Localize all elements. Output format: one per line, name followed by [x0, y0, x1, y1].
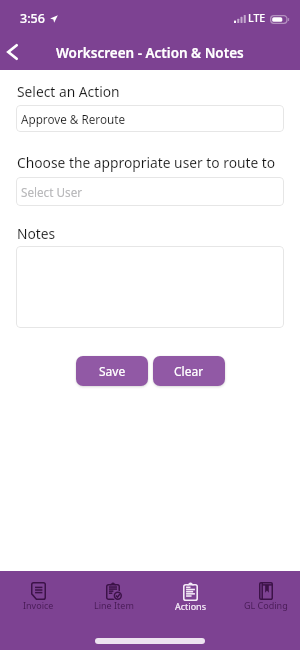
staticText: Clear	[174, 363, 204, 379]
button[interactable]: Select User	[16, 177, 284, 206]
staticText: Select an Action	[17, 82, 120, 101]
staticText: Save	[99, 363, 126, 379]
button[interactable]: Approve & Reroute	[16, 105, 284, 132]
button[interactable]: Back	[0, 30, 25, 70]
staticText: Approve & Reroute	[21, 111, 125, 127]
staticText: 3:56	[20, 10, 45, 27]
staticText: Invoice	[23, 599, 54, 611]
staticText: Actions	[175, 600, 206, 612]
staticText: Notes	[17, 224, 56, 243]
button[interactable]: Actions	[152, 573, 228, 621]
button[interactable]: Save	[76, 356, 148, 386]
staticText: Workscreen - Action & Notes	[56, 44, 244, 62]
button[interactable]: GL Coding	[228, 573, 300, 621]
staticText: Line Item	[94, 599, 134, 611]
staticText: Choose the appropriate user to route to	[17, 153, 276, 172]
button[interactable]: Invoice	[0, 573, 76, 621]
staticText: LTE	[248, 11, 266, 25]
button[interactable]: Line Item	[76, 573, 152, 621]
staticText: GL Coding	[244, 599, 288, 611]
button[interactable]: Clear	[153, 356, 225, 386]
staticText: Select User	[21, 184, 83, 200]
button[interactable]	[16, 246, 284, 328]
